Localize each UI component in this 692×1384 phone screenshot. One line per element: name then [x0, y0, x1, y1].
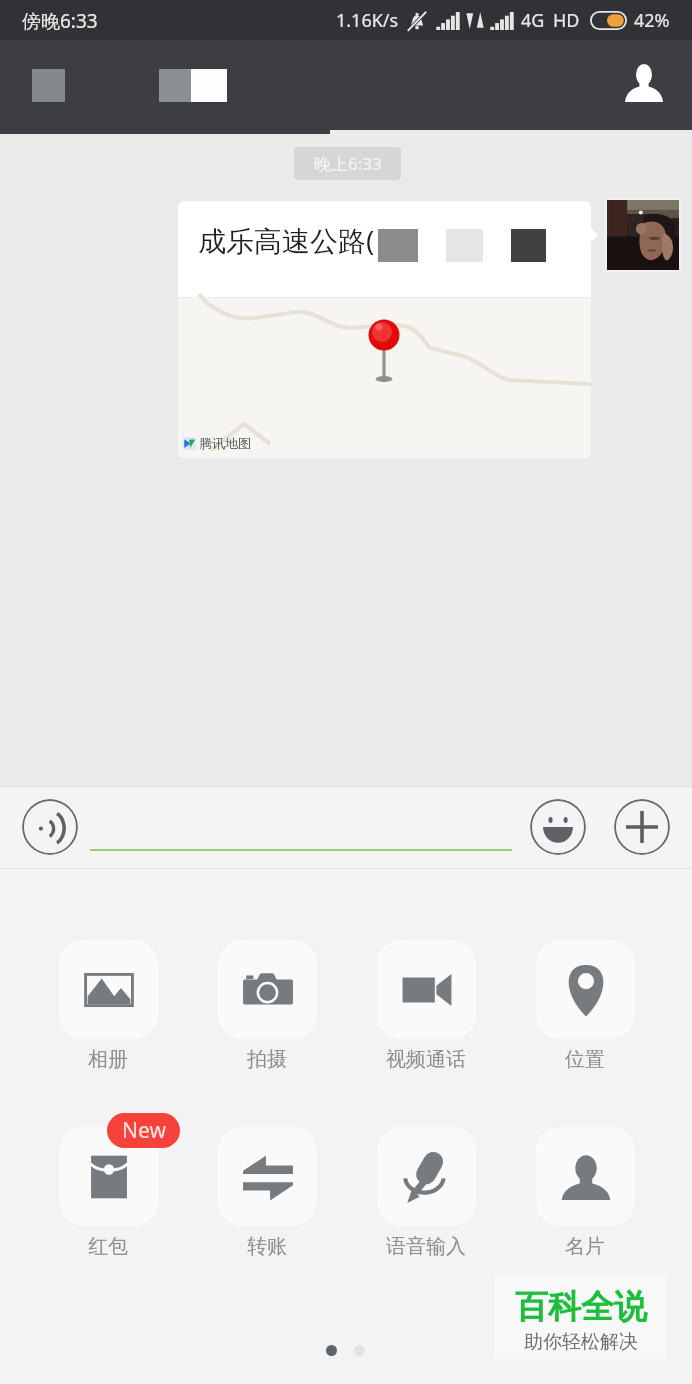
staticText: New	[122, 1116, 166, 1145]
staticText: 成乐高速公路(	[198, 221, 375, 259]
staticText: 拍摄	[247, 1047, 287, 1072]
staticText: 助你轻松解决	[524, 1330, 638, 1354]
staticText: 4G	[521, 8, 545, 33]
button[interactable]: Voice input	[22, 799, 78, 855]
button[interactable]: 名片	[506, 1127, 664, 1259]
staticText: 语音输入	[386, 1234, 466, 1259]
staticText: 百科全说	[515, 1286, 647, 1328]
staticText: 晚上6:33	[314, 152, 382, 175]
staticText: 转账	[247, 1234, 287, 1259]
button[interactable]: 拍摄	[188, 940, 346, 1072]
button[interactable]: 相册	[29, 940, 187, 1072]
button[interactable]: 红包	[29, 1127, 187, 1259]
button[interactable]: Contact profile	[618, 57, 670, 109]
staticText: 42%	[634, 8, 670, 33]
staticText: 1.16K/s	[336, 8, 399, 33]
button[interactable]: 视频通话	[347, 940, 505, 1072]
staticText: 相册	[88, 1047, 128, 1072]
staticText: 腾讯地图	[199, 435, 251, 451]
button[interactable]: 成乐高速公路(	[178, 201, 591, 458]
button[interactable]: More options	[614, 799, 670, 855]
staticText: 红包	[88, 1234, 128, 1259]
staticText: 位置	[565, 1047, 605, 1072]
staticText: 视频通话	[386, 1047, 466, 1072]
button[interactable]: 转账	[188, 1127, 346, 1259]
button[interactable]: Emoji	[530, 799, 586, 855]
staticText: 傍晚6:33	[22, 8, 98, 34]
button[interactable]: 位置	[506, 940, 664, 1072]
staticText: HD	[553, 8, 580, 33]
staticText: 名片	[565, 1234, 605, 1259]
button[interactable]: 语音输入	[347, 1127, 505, 1259]
